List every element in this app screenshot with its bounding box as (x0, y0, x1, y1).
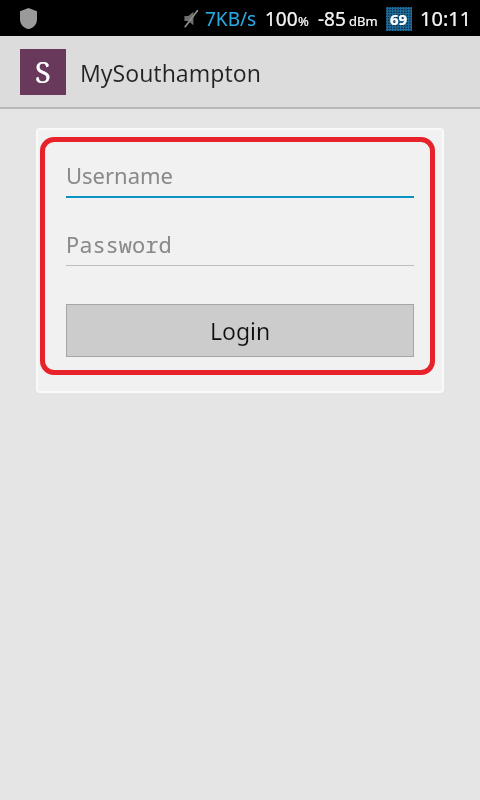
staticText: 100 (265, 6, 298, 32)
button[interactable]: Username (66, 154, 414, 198)
staticText: Password (66, 229, 172, 259)
other: MySouthampton logo (20, 49, 66, 95)
button[interactable]: Password (66, 223, 414, 266)
staticText: 7KB/s (205, 6, 257, 32)
staticText: Login (210, 315, 271, 346)
staticText: 69 (390, 9, 408, 29)
staticText: Username (66, 160, 174, 190)
staticText: % (298, 12, 309, 30)
staticText: -85 (318, 6, 346, 32)
staticText: MySouthampton (80, 57, 261, 88)
staticText: 10:11 (420, 5, 472, 32)
staticText: S (35, 52, 51, 91)
button[interactable]: Login (66, 304, 414, 357)
staticText: dBm (349, 12, 378, 30)
